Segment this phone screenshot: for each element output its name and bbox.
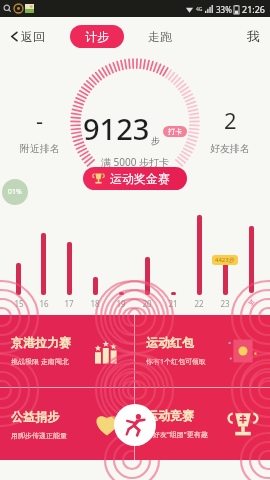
button[interactable]: 打卡 xyxy=(163,126,187,137)
staticText: 今 xyxy=(248,298,255,307)
staticText: 2 xyxy=(224,105,237,135)
button[interactable]: 运动竞赛 xyxy=(135,388,270,460)
staticText: 挑战极限 走南闯北 xyxy=(11,357,69,367)
button[interactable]: 京港拉力赛 xyxy=(0,315,134,387)
staticText: 附近排名 xyxy=(20,142,60,155)
staticText: 01% xyxy=(8,187,22,197)
staticText: 15 xyxy=(14,298,24,309)
staticText: 打卡 xyxy=(168,127,182,136)
button[interactable]: 走跑 xyxy=(144,25,176,48)
staticText: 与好友"组团"更有趣 xyxy=(146,430,208,440)
staticText: 21 xyxy=(168,298,178,309)
button[interactable]: 4423步 xyxy=(212,215,238,309)
staticText: 好友排名 xyxy=(210,142,250,155)
button[interactable]: 20 xyxy=(134,215,160,309)
staticText: 33% xyxy=(216,4,232,15)
button[interactable]: 17 xyxy=(56,215,82,309)
button[interactable]: 18 xyxy=(82,215,108,309)
staticText: 步 xyxy=(151,135,160,146)
staticText: 京港拉力赛 xyxy=(11,335,71,350)
staticText: 走跑 xyxy=(148,29,172,44)
staticText: 返回 xyxy=(21,29,45,44)
button[interactable]: 运动红包 xyxy=(135,315,270,387)
staticText: 20 xyxy=(142,298,152,309)
button[interactable]: 开始跑步 xyxy=(114,404,156,446)
staticText: 运动竞赛 xyxy=(146,408,194,423)
button[interactable]: 运动奖金赛 xyxy=(83,167,187,190)
button[interactable]: 计步 xyxy=(70,25,124,48)
staticText: 我 xyxy=(247,28,260,44)
staticText: 计步 xyxy=(85,29,109,44)
staticText: 22 xyxy=(194,298,204,309)
button[interactable]: 21 xyxy=(160,215,186,309)
staticText: 运动奖金赛 xyxy=(110,171,170,186)
staticText: 4G xyxy=(196,6,203,13)
button[interactable]: 16 xyxy=(31,215,56,309)
button[interactable]: 22 xyxy=(186,215,212,309)
staticText: 用脚步传递正能量 xyxy=(11,431,67,440)
button[interactable]: 公益捐步 xyxy=(0,388,134,460)
staticText: 运动红包 xyxy=(146,335,194,350)
button[interactable]: 2 xyxy=(204,99,256,161)
button[interactable]: 我 xyxy=(237,24,270,48)
button[interactable]: 19 xyxy=(108,215,134,309)
staticText: 满 5000 步打卡 xyxy=(101,155,170,169)
staticText: 4423步 xyxy=(215,256,235,264)
staticText: 16 xyxy=(39,298,49,309)
staticText: 23 xyxy=(220,298,230,309)
button[interactable]: - xyxy=(14,99,66,161)
staticText: 21:26 xyxy=(242,3,266,15)
staticText: 你有1个红包可领取 xyxy=(146,357,207,367)
staticText: - xyxy=(36,105,44,135)
staticText: 19 xyxy=(116,298,126,309)
staticText: 9123 xyxy=(83,109,150,148)
staticText: 公益捐步 xyxy=(11,409,59,424)
button[interactable]: 返回 xyxy=(6,25,48,48)
staticText: 17 xyxy=(64,298,74,309)
button[interactable]: 今 xyxy=(238,215,264,309)
button[interactable]: 15 xyxy=(6,215,31,309)
button[interactable]: 01% xyxy=(2,179,28,205)
staticText: 18 xyxy=(90,298,100,309)
